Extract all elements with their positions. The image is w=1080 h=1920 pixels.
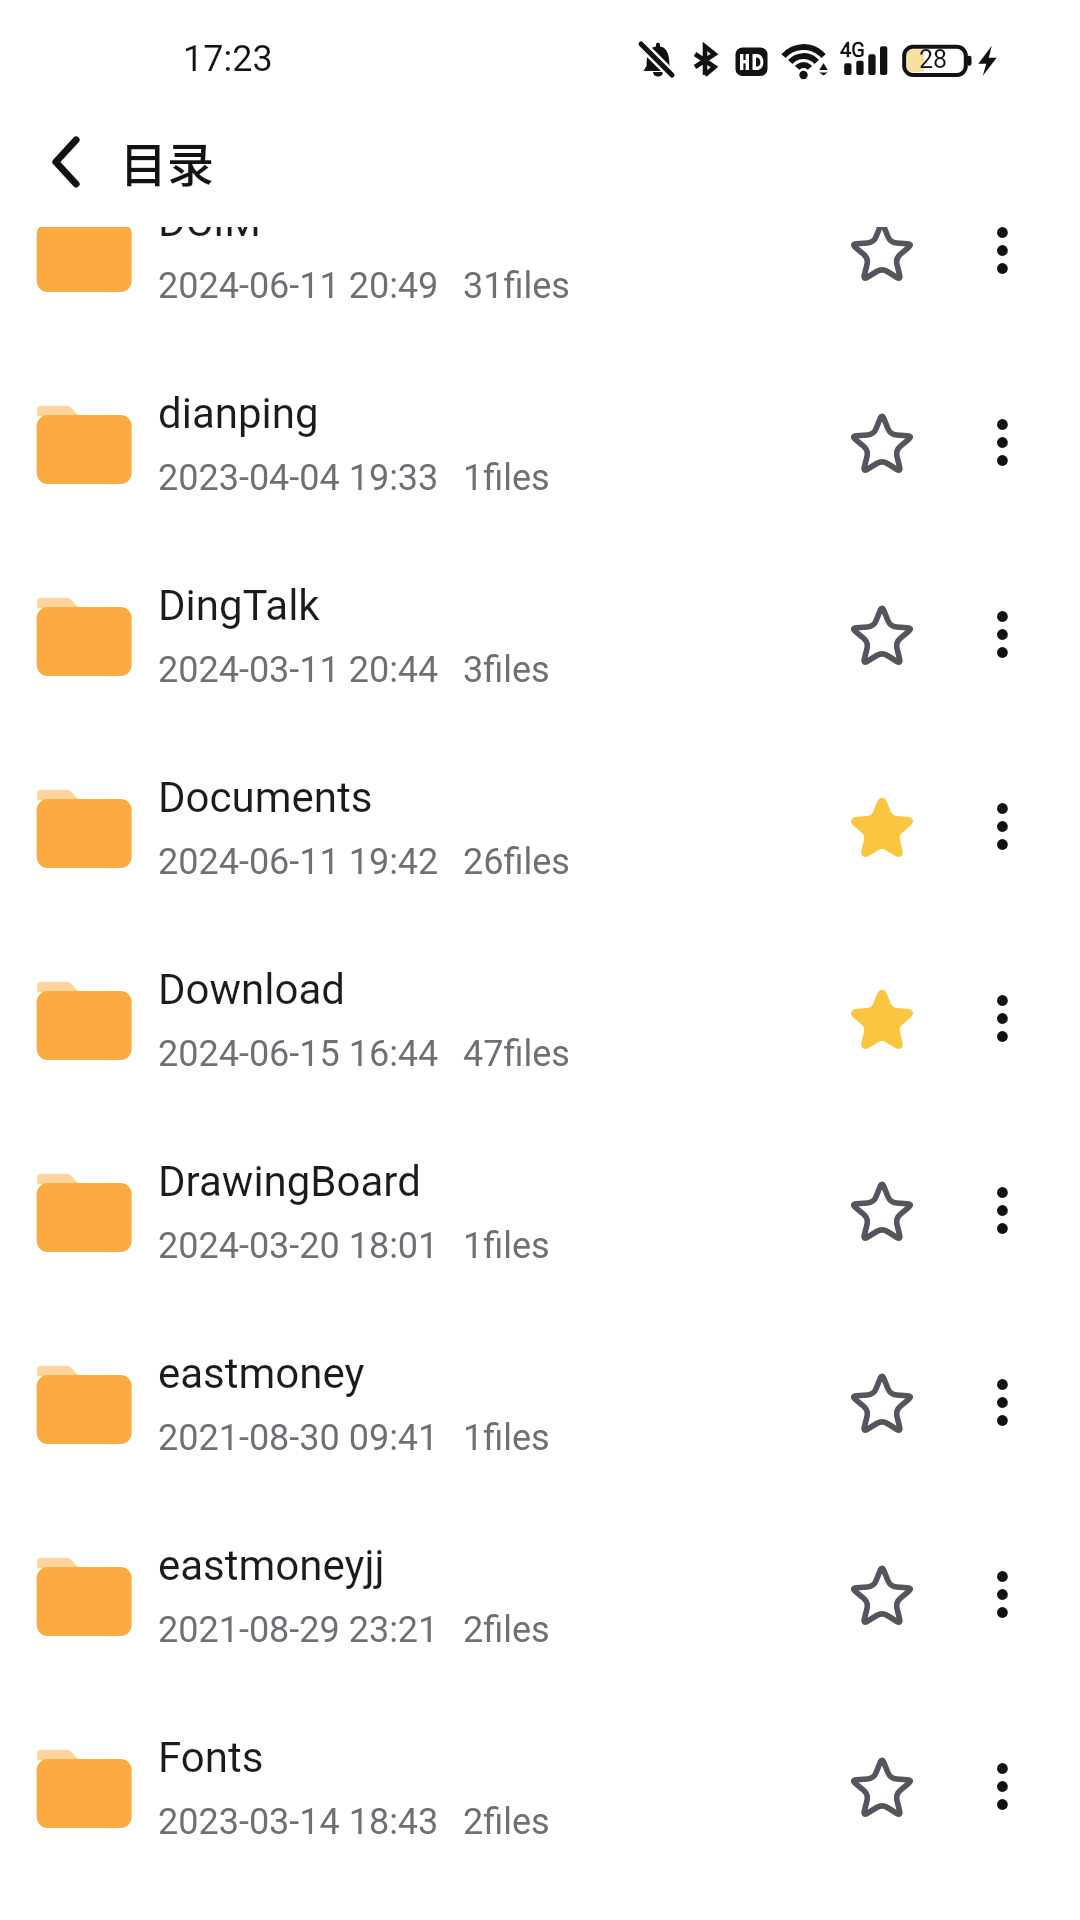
staticText: 31files [463,265,570,307]
button[interactable]: More options [962,1557,1044,1639]
staticText: 目录 [120,127,214,195]
staticText: 47files [463,1033,570,1075]
staticText: 4G [840,38,865,61]
button[interactable]: Add to favourites [836,1744,928,1836]
staticText: 28 [919,45,948,74]
staticText: 1files [463,457,550,499]
staticText: 2021-08-29 23:21 [158,1609,439,1651]
button[interactable]: DingTalk [0,600,1080,792]
button[interactable]: More options [962,1173,1044,1255]
staticText: DingTalk [158,581,320,630]
button[interactable]: Add to favourites [836,400,928,492]
staticText: 2files [463,1801,550,1843]
button[interactable]: Remove from favourites [836,784,928,876]
staticText: 2023-04-04 19:33 [158,457,439,499]
button[interactable]: Add to favourites [836,227,928,300]
staticText: 2024-06-15 16:44 [158,1033,439,1075]
staticText: 2024-06-11 20:49 [158,265,439,307]
staticText: DCIM [158,227,261,246]
button[interactable]: More options [962,789,1044,871]
button[interactable]: Documents [0,792,1080,984]
staticText: eastmoneyjj [158,1541,385,1590]
button[interactable]: Add to favourites [836,1168,928,1260]
staticText: 1files [463,1417,550,1459]
button[interactable]: DrawingBoard [0,1176,1080,1368]
staticText: 2021-08-30 09:41 [158,1417,439,1459]
staticText: 26files [463,841,570,883]
staticText: eastmoney [158,1349,365,1398]
button[interactable]: Fonts [0,1752,1080,1920]
button[interactable]: More options [962,405,1044,487]
button[interactable]: Remove from favourites [836,976,928,1068]
staticText: 2024-03-11 20:44 [158,649,439,691]
staticText: 1files [463,1225,550,1267]
staticText: Download [158,965,345,1014]
staticText: 2files [463,1609,550,1651]
button[interactable]: DCIM [0,227,1080,408]
button[interactable]: Back [30,120,106,204]
staticText: 17:23 [183,38,273,80]
button[interactable]: More options [962,227,1044,295]
button[interactable]: Add to favourites [836,1552,928,1644]
staticText: Fonts [158,1733,264,1782]
button[interactable]: eastmoneyjj [0,1560,1080,1752]
staticText: 2023-03-14 18:43 [158,1801,439,1843]
button[interactable]: More options [962,981,1044,1063]
staticText: 2024-03-20 18:01 [158,1225,439,1267]
staticText: Documents [158,773,373,822]
button[interactable]: More options [962,1749,1044,1831]
staticText: dianping [158,389,319,438]
button[interactable]: dianping [0,408,1080,600]
staticText: DrawingBoard [158,1157,421,1206]
button[interactable]: More options [962,1365,1044,1447]
staticText: 2024-06-11 19:42 [158,841,439,883]
button[interactable]: Download [0,984,1080,1176]
button[interactable]: Add to favourites [836,592,928,684]
button[interactable]: More options [962,597,1044,679]
staticText: 3files [463,649,550,691]
button[interactable]: Add to favourites [836,1360,928,1452]
button[interactable]: eastmoney [0,1368,1080,1560]
